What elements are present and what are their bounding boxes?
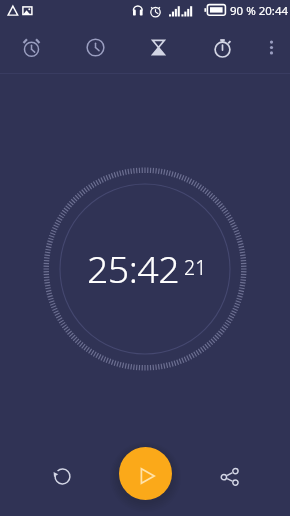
button[interactable]: Clock bbox=[69, 22, 121, 73]
button[interactable]: Start bbox=[119, 447, 172, 500]
staticText: 90 % 20:44 bbox=[230, 3, 289, 19]
staticText: 25:42 bbox=[87, 243, 180, 294]
button[interactable]: Alarm bbox=[5, 22, 57, 73]
button[interactable]: Timer bbox=[132, 22, 184, 73]
button[interactable]: More options bbox=[252, 22, 290, 73]
button[interactable]: Stopwatch bbox=[196, 22, 248, 73]
button[interactable]: Reset bbox=[38, 452, 86, 500]
button[interactable]: Share bbox=[205, 452, 253, 500]
staticText: 21 bbox=[184, 254, 207, 281]
